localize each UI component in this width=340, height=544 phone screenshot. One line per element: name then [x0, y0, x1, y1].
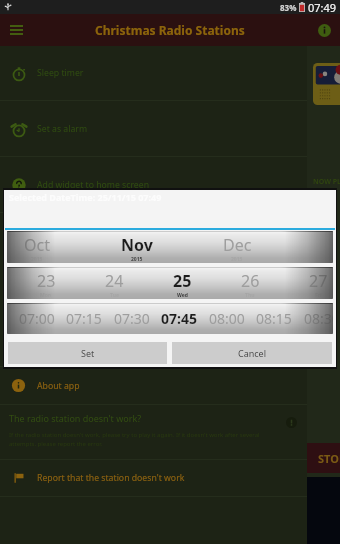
staticText: 07:00 [19, 309, 55, 328]
staticText: 2015 [131, 256, 143, 263]
staticText: 25 [173, 270, 192, 292]
staticText: 26 [241, 270, 260, 292]
staticText: 27 [309, 270, 328, 292]
button[interactable]: The radio station doesn't work? [0, 405, 307, 459]
staticText: If the radio station doesn't work, pleas… [9, 431, 279, 448]
staticText: 24 [105, 270, 124, 292]
staticText: Nov [121, 234, 153, 256]
staticText: 08:15 [256, 309, 292, 328]
button[interactable]: Set [8, 342, 167, 364]
button[interactable]: Set as alarm [0, 101, 307, 156]
staticText: 07:45 [161, 309, 197, 328]
button[interactable]: 08:15 [250, 303, 298, 334]
staticText: Add widget to home screen [37, 179, 150, 191]
button[interactable]: Sleep timer [0, 46, 307, 100]
staticText: Set [81, 347, 95, 359]
button[interactable]: 08:30 [298, 303, 333, 334]
staticText: Report that the station doesn't work [37, 472, 185, 484]
staticText: Selected DateTime: 25/11/15 07:49 [9, 191, 162, 203]
button[interactable]: Nov [87, 232, 187, 263]
button[interactable]: 07:30 [108, 303, 156, 334]
staticText: Christmas Radio Stations [95, 22, 245, 38]
staticText: Oct [24, 234, 50, 256]
staticText: Dec [223, 234, 252, 256]
button[interactable]: Add widget to home screen [0, 157, 307, 212]
staticText: 08:30 [304, 309, 333, 328]
button[interactable]: 22 [7, 268, 12, 299]
staticText: Mon [40, 292, 52, 299]
staticText: Fri [315, 292, 322, 299]
button[interactable]: 23 [12, 268, 80, 299]
button[interactable]: Report that the station doesn't work [0, 460, 307, 496]
staticText: Tue [110, 292, 119, 299]
staticText: STOP [318, 451, 340, 466]
staticText: 08:00 [209, 309, 245, 328]
staticText: 07:15 [66, 309, 102, 328]
staticText: Wed [177, 292, 188, 299]
staticText: 23 [37, 270, 56, 292]
staticText: 2015 [31, 256, 43, 263]
button[interactable]: 08:00 [203, 303, 251, 334]
staticText: Set as alarm [37, 123, 88, 135]
staticText: 83% [280, 2, 297, 13]
staticText: 07:30 [114, 309, 150, 328]
button[interactable]: Open navigation drawer [3, 17, 29, 43]
button[interactable]: About app [0, 367, 307, 404]
staticText: The radio station doesn't work? [9, 412, 142, 424]
button[interactable]: 07:15 [60, 303, 108, 334]
button[interactable]: 27 [284, 268, 333, 299]
staticText: NOW PLAYING [313, 177, 340, 187]
button[interactable]: Oct [7, 232, 87, 263]
staticText: 2015 [231, 256, 243, 263]
staticText: About app [37, 380, 80, 392]
button[interactable]: 25 [148, 268, 216, 299]
button[interactable]: Info [312, 18, 336, 42]
button[interactable]: 07:00 [13, 303, 61, 334]
button[interactable]: 07:45 [155, 303, 203, 334]
button[interactable]: Dec [187, 232, 287, 263]
staticText: 07:49 [308, 0, 337, 14]
staticText: Sleep timer [37, 67, 84, 79]
staticText: Thu [245, 292, 255, 299]
button[interactable]: 24 [80, 268, 148, 299]
button[interactable]: Cancel [172, 342, 332, 364]
staticText: Cancel [238, 347, 267, 359]
button[interactable]: 26 [216, 268, 284, 299]
